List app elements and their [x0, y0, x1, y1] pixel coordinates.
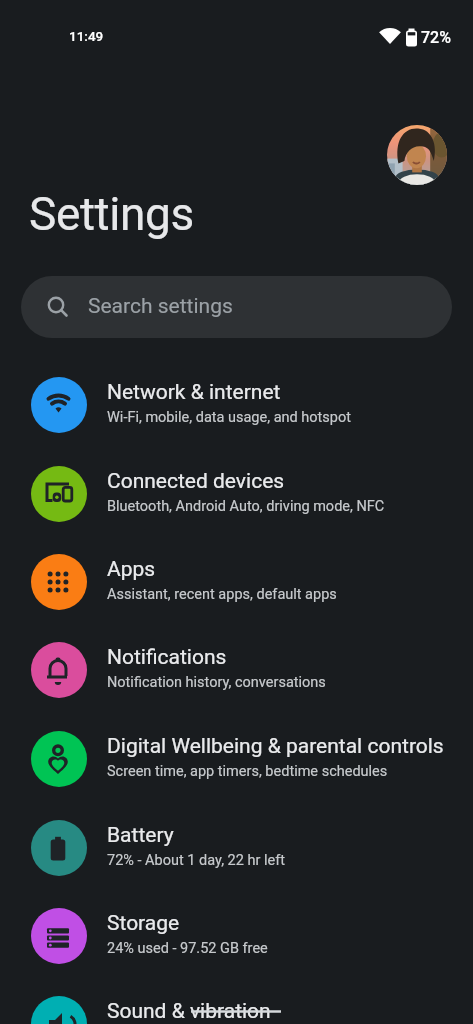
- staticText: Apps: [107, 557, 156, 582]
- staticText: Notifications: [107, 645, 227, 670]
- staticText: Connected devices: [107, 469, 285, 494]
- staticText: Digital Wellbeing & parental controls: [107, 734, 444, 759]
- button[interactable]: Search settings: [21, 276, 452, 338]
- button[interactable]: Digital Wellbeing & parental controls: [0, 717, 473, 805]
- staticText: Network & internet: [107, 380, 281, 405]
- staticText: Storage: [107, 911, 180, 936]
- staticText: Bluetooth, Android Auto, driving mode, N…: [107, 498, 385, 515]
- staticText: Wi-Fi, mobile, data usage, and hotspot: [107, 409, 351, 426]
- button[interactable]: Connected devices: [0, 452, 473, 540]
- staticText: Sound & vibration: [107, 999, 271, 1024]
- staticText: 72% - About 1 day, 22 hr left: [107, 852, 285, 869]
- button[interactable]: [387, 125, 447, 185]
- staticText: Screen time, app timers, bedtime schedul…: [107, 763, 388, 780]
- button[interactable]: Battery: [0, 806, 473, 894]
- button[interactable]: Apps: [0, 540, 473, 628]
- button[interactable]: Sound & vibration: [0, 982, 473, 1024]
- staticText: Settings: [29, 187, 194, 241]
- button[interactable]: Storage: [0, 894, 473, 982]
- staticText: Assistant, recent apps, default apps: [107, 586, 337, 603]
- staticText: 72%: [421, 28, 451, 47]
- button[interactable]: Notifications: [0, 628, 473, 716]
- staticText: Notification history, conversations: [107, 674, 326, 691]
- staticText: Battery: [107, 823, 174, 848]
- staticText: 24% used - 97.52 GB free: [107, 940, 268, 957]
- staticText: 11:49: [69, 28, 104, 44]
- button[interactable]: Network & internet: [0, 363, 473, 451]
- staticText: Search settings: [88, 294, 233, 319]
